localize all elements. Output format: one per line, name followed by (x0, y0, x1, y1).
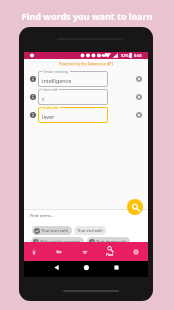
button[interactable]: That end with (74, 226, 106, 235)
button[interactable]: With similar meaning (31, 237, 84, 246)
button[interactable]: Find (98, 242, 122, 261)
staticText: 8:55 (134, 53, 142, 58)
staticText: Ends with (43, 105, 59, 109)
button[interactable]: Bookmarks (22, 242, 46, 261)
button[interactable]: Clear Start with (135, 93, 142, 100)
button[interactable]: Info about Start with (29, 93, 36, 100)
staticText: That rhyme with (96, 239, 127, 244)
staticText: Find words you want to learn (0, 10, 174, 22)
button[interactable]: lever (38, 107, 108, 123)
staticText: Find (106, 252, 114, 257)
button[interactable]: Learn (73, 242, 97, 261)
staticText: intelligence (42, 77, 72, 84)
staticText: With similar meaning (40, 239, 81, 244)
button[interactable]: Clear Similar meaning (135, 75, 142, 82)
staticText: lever (42, 113, 55, 120)
button[interactable]: Settings (124, 242, 148, 261)
button[interactable]: Clear Ends with (135, 111, 142, 118)
button[interactable]: That start with (32, 226, 72, 235)
staticText: Find terms... (30, 213, 55, 219)
button[interactable]: Folders (47, 242, 71, 261)
staticText: 82% (121, 53, 129, 58)
staticText: Similar meaning (43, 69, 69, 73)
button[interactable]: Powered by the Datamuse API (24, 61, 148, 66)
button[interactable]: Search (127, 199, 143, 215)
staticText: That end with (77, 228, 103, 233)
staticText: c (42, 95, 45, 102)
button[interactable]: Info about Ends with (29, 111, 36, 118)
button[interactable]: c (38, 89, 108, 105)
button[interactable]: intelligence (38, 71, 108, 87)
staticText: Start with (43, 87, 58, 91)
button[interactable]: Info about Similar meaning (29, 75, 36, 82)
button[interactable]: That rhyme with (87, 237, 130, 246)
staticText: That start with (41, 228, 69, 233)
